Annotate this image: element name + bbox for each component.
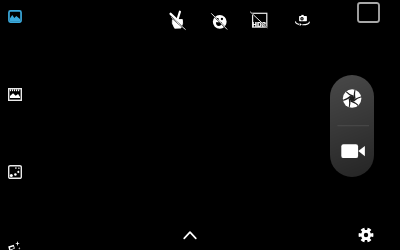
button[interactable]: Effects: [8, 165, 22, 179]
staticText: HDR: [252, 20, 266, 29]
button[interactable]: Take photo: [330, 75, 374, 128]
button[interactable]: Expand: [183, 230, 197, 241]
button[interactable]: HDR off: [248, 10, 270, 31]
button[interactable]: Gallery: [8, 10, 22, 23]
button[interactable]: Gesture shot off: [167, 10, 187, 31]
button[interactable]: Record video: [330, 128, 374, 177]
button[interactable]: Auto enhance: [5, 237, 24, 250]
button[interactable]: Shooting mode: [8, 88, 22, 101]
button[interactable]: Smile shot off: [211, 13, 229, 31]
button[interactable]: Switch camera: [292, 13, 312, 28]
button[interactable]: Settings: [358, 227, 374, 243]
button[interactable]: Aspect ratio: [357, 2, 380, 23]
